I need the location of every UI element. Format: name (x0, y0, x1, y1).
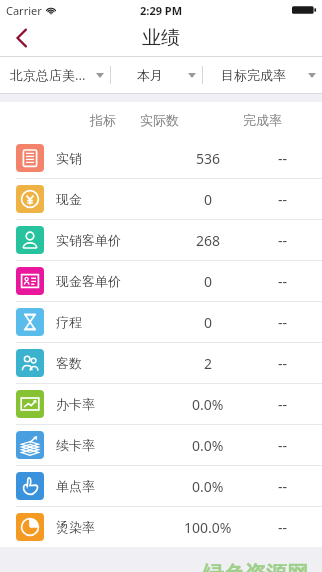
button[interactable]: Back (0, 20, 44, 56)
staticText: 0 (204, 313, 213, 332)
button[interactable]: 实销客单价 (0, 220, 322, 260)
button[interactable]: 烫染率 (0, 507, 322, 547)
staticText: 现金 (56, 191, 82, 207)
staticText: 0 (204, 190, 213, 209)
staticText: 办卡率 (56, 396, 95, 412)
button[interactable]: 续卡率 (0, 425, 322, 465)
staticText: 0.0% (192, 395, 224, 414)
staticText: -- (278, 231, 288, 250)
staticText: -- (278, 313, 288, 332)
staticText: 2:29 PM (140, 3, 183, 18)
button[interactable]: 现金 (0, 179, 322, 219)
staticText: 536 (196, 149, 221, 168)
staticText: 疗程 (56, 314, 82, 330)
staticText: 实销 (56, 150, 82, 166)
button[interactable]: 疗程 (0, 302, 322, 342)
staticText: -- (278, 190, 288, 209)
staticText: -- (278, 149, 288, 168)
staticText: -- (278, 436, 288, 455)
staticText: 指标 (90, 112, 116, 128)
staticText: 实际数 (140, 112, 179, 128)
staticText: 烫染率 (56, 519, 95, 535)
button[interactable]: 目标完成率 (203, 57, 322, 93)
staticText: -- (278, 354, 288, 373)
staticText: 0 (204, 272, 213, 291)
staticText: 实销客单价 (56, 232, 121, 248)
button[interactable]: 单点率 (0, 466, 322, 506)
staticText: 完成率 (243, 112, 282, 128)
staticText: -- (278, 477, 288, 496)
staticText: 绿色资源网 (203, 561, 308, 572)
staticText: 目标完成率 (221, 67, 286, 83)
staticText: 2 (204, 354, 213, 373)
staticText: -- (278, 518, 288, 537)
staticText: 客数 (56, 355, 82, 371)
staticText: 北京总店美... (10, 66, 86, 84)
staticText: 0.0% (192, 477, 224, 496)
button[interactable]: 办卡率 (0, 384, 322, 424)
staticText: -- (278, 272, 288, 291)
button[interactable]: 本月 (111, 57, 202, 93)
staticText: Carrier (6, 3, 42, 18)
staticText: 业绩 (142, 26, 180, 50)
staticText: 0.0% (192, 436, 224, 455)
staticText: 268 (196, 231, 221, 250)
staticText: 续卡率 (56, 437, 95, 453)
staticText: -- (278, 395, 288, 414)
button[interactable]: 现金客单价 (0, 261, 322, 301)
staticText: 本月 (137, 67, 163, 83)
staticText: 现金客单价 (56, 273, 121, 289)
staticText: 100.0% (184, 518, 232, 537)
button[interactable]: 北京总店美... (0, 57, 110, 93)
staticText: 单点率 (56, 478, 95, 494)
button[interactable]: 实销 (0, 138, 322, 178)
button[interactable]: 客数 (0, 343, 322, 383)
